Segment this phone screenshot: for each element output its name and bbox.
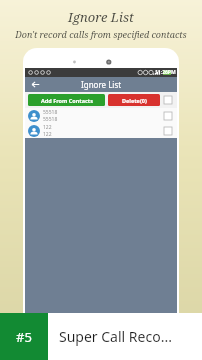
button[interactable]: Back: [25, 77, 45, 92]
button[interactable]: Select: [164, 112, 172, 120]
button[interactable]: Add From Contacts: [28, 94, 105, 106]
staticText: Ignore List: [68, 8, 134, 26]
staticText: Ignore List: [81, 79, 122, 90]
staticText: Don't record calls from specified contac…: [15, 28, 187, 40]
staticText: #5: [16, 328, 32, 346]
staticText: Delete(0): [122, 97, 147, 104]
button[interactable]: Select: [164, 127, 172, 135]
button[interactable]: #5: [0, 313, 48, 360]
staticText: 122: [43, 131, 52, 138]
staticText: 122: [43, 124, 52, 131]
staticText: 55518: [43, 109, 58, 116]
staticText: 11:26PM: [155, 69, 176, 76]
staticText: 55518: [43, 116, 58, 123]
button[interactable]: 55518: [25, 108, 177, 123]
button[interactable]: 122: [25, 123, 177, 138]
staticText: Super Call Reco...: [59, 327, 172, 346]
staticText: Add From Contacts: [41, 97, 93, 104]
button[interactable]: Super Call Reco...: [48, 313, 202, 360]
button[interactable]: Select: [164, 96, 172, 104]
button[interactable]: Delete(0): [108, 94, 160, 106]
